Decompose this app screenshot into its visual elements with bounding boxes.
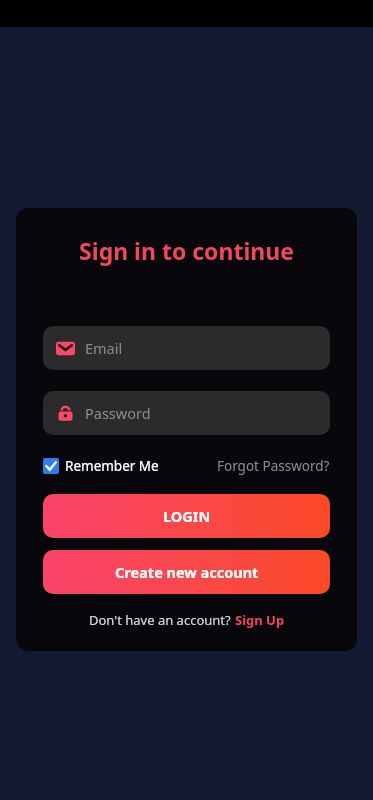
staticText: Email <box>85 338 123 358</box>
button[interactable]: Remember Me checkbox <box>43 455 159 477</box>
other: Email <box>56 339 75 358</box>
staticText: Remember Me <box>65 457 159 475</box>
staticText: LOGIN <box>163 506 211 526</box>
other: Remember Me checkbox <box>43 458 59 474</box>
button[interactable]: Sign Up <box>235 611 285 629</box>
staticText: Sign Up <box>235 611 285 629</box>
staticText: Sign in to continue <box>43 235 330 266</box>
button[interactable]: Forgot Password? <box>217 455 330 477</box>
staticText: Create new account <box>115 562 259 582</box>
staticText: Password <box>85 403 151 423</box>
button[interactable]: Create new account <box>43 550 330 594</box>
staticText: Don't have an account? <box>89 611 235 629</box>
staticText: Forgot Password? <box>217 457 330 475</box>
button[interactable]: Password <box>43 391 330 435</box>
other: Password <box>56 404 75 423</box>
button[interactable]: Email <box>43 326 330 370</box>
button[interactable]: LOGIN <box>43 494 330 538</box>
